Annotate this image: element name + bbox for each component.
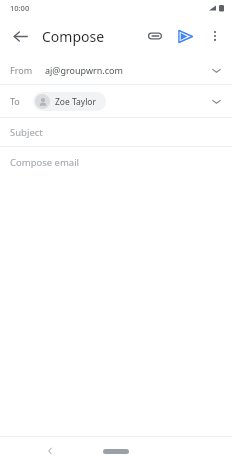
staticText: aj@groupwrn.com: [45, 64, 123, 76]
button[interactable]: Subject: [0, 118, 232, 146]
button[interactable]: Attach file: [140, 21, 170, 51]
button[interactable]: Zoe Taylor: [33, 92, 106, 111]
staticText: Compose: [42, 27, 105, 46]
staticText: Subject: [10, 126, 43, 139]
staticText: Compose email: [10, 156, 80, 169]
staticText: To: [10, 95, 20, 107]
staticText: From: [10, 64, 33, 76]
button[interactable]: From: [0, 56, 232, 84]
staticText: 10:00: [10, 3, 30, 13]
button[interactable]: Send: [170, 21, 200, 51]
button[interactable]: Compose email: [0, 147, 232, 177]
button[interactable]: More options: [200, 21, 230, 51]
button[interactable]: To: [0, 85, 232, 117]
button[interactable]: Home: [101, 441, 131, 461]
button[interactable]: Back: [40, 441, 60, 461]
button[interactable]: Back: [4, 20, 36, 52]
staticText: Zoe Taylor: [55, 96, 97, 108]
